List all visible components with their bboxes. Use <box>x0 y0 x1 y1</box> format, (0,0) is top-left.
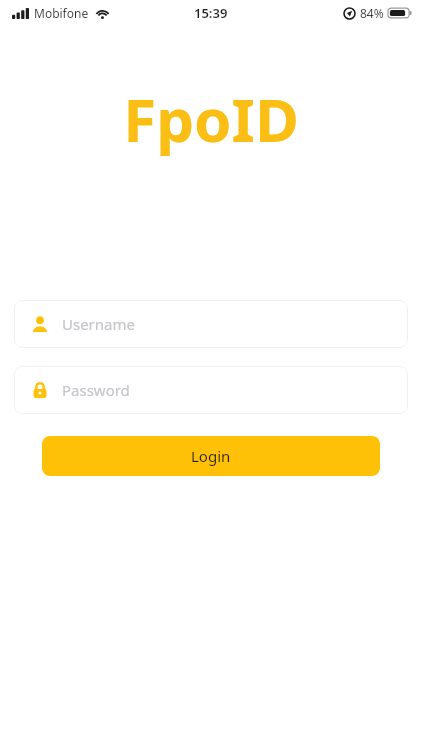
staticText: Password <box>62 380 130 400</box>
button[interactable]: Username <box>14 300 408 348</box>
button[interactable]: Password <box>14 366 408 414</box>
staticText: FpoID <box>123 78 299 160</box>
button[interactable]: Login <box>42 436 380 476</box>
staticText: 84% <box>360 5 384 21</box>
staticText: Username <box>62 314 135 334</box>
staticText: Login <box>191 446 231 466</box>
staticText: 15:39 <box>194 4 228 22</box>
staticText: Mobifone <box>34 5 89 21</box>
